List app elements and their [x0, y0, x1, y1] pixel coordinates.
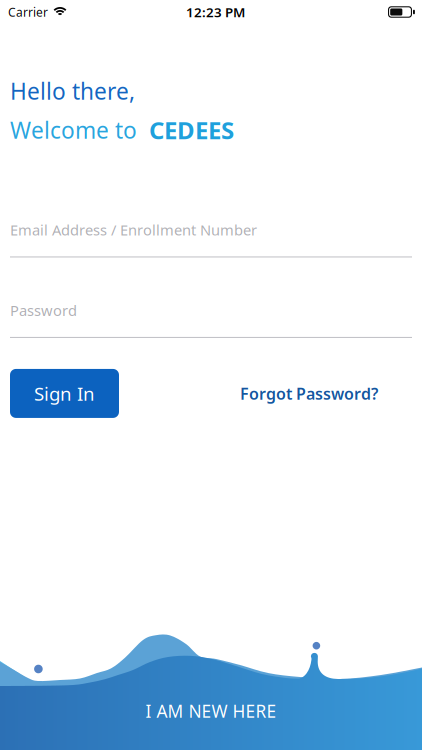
staticText: Welcome to	[10, 115, 137, 145]
staticText: Forgot Password?	[240, 383, 378, 404]
staticText: Email Address / Enrollment Number	[10, 220, 257, 239]
button[interactable]: I AM NEW HERE	[0, 590, 422, 750]
staticText: I AM NEW HERE	[145, 699, 276, 722]
staticText: CEDEES	[149, 114, 234, 146]
button[interactable]: Forgot Password?	[234, 375, 384, 412]
staticText: Password	[10, 300, 77, 320]
button[interactable]: Sign In	[10, 369, 119, 418]
staticText: 12:23 PM	[186, 3, 245, 21]
staticText: Carrier	[8, 4, 48, 20]
staticText: Sign In	[34, 381, 95, 406]
staticText: Hello there,	[10, 76, 135, 106]
